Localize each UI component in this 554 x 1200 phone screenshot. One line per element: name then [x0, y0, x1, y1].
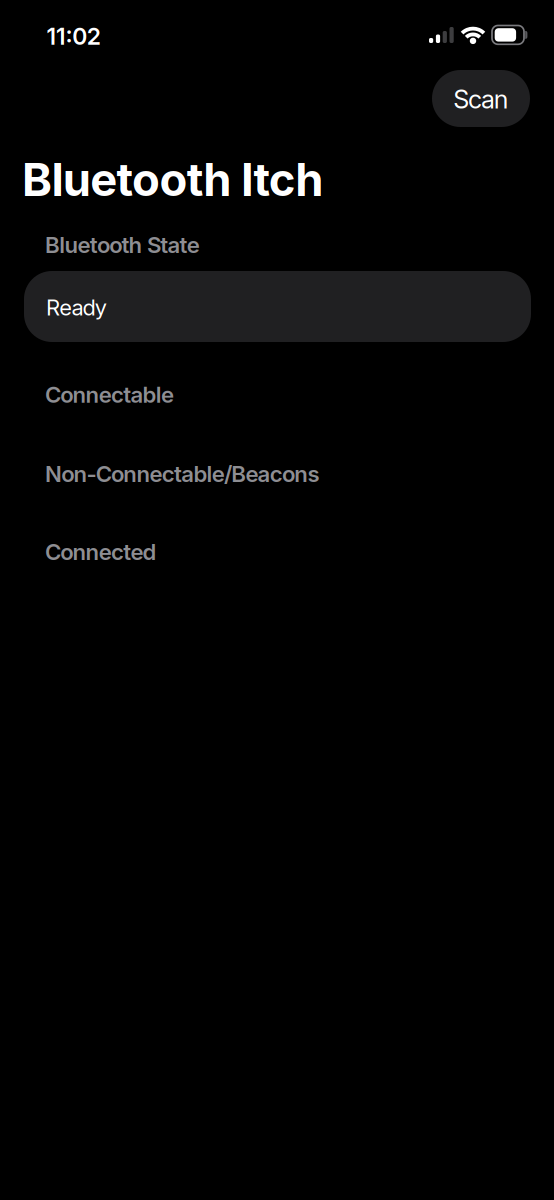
staticText: Ready: [46, 294, 107, 321]
staticText: 11:02: [46, 22, 101, 50]
button[interactable]: Scan: [432, 70, 530, 127]
staticText: Scan: [453, 84, 509, 114]
staticText: Bluetooth Itch: [22, 152, 323, 207]
staticText: Bluetooth State: [45, 231, 200, 258]
staticText: Non-Connectable/Beacons: [45, 460, 319, 487]
staticText: Connected: [45, 538, 157, 565]
staticText: Connectable: [45, 381, 174, 408]
